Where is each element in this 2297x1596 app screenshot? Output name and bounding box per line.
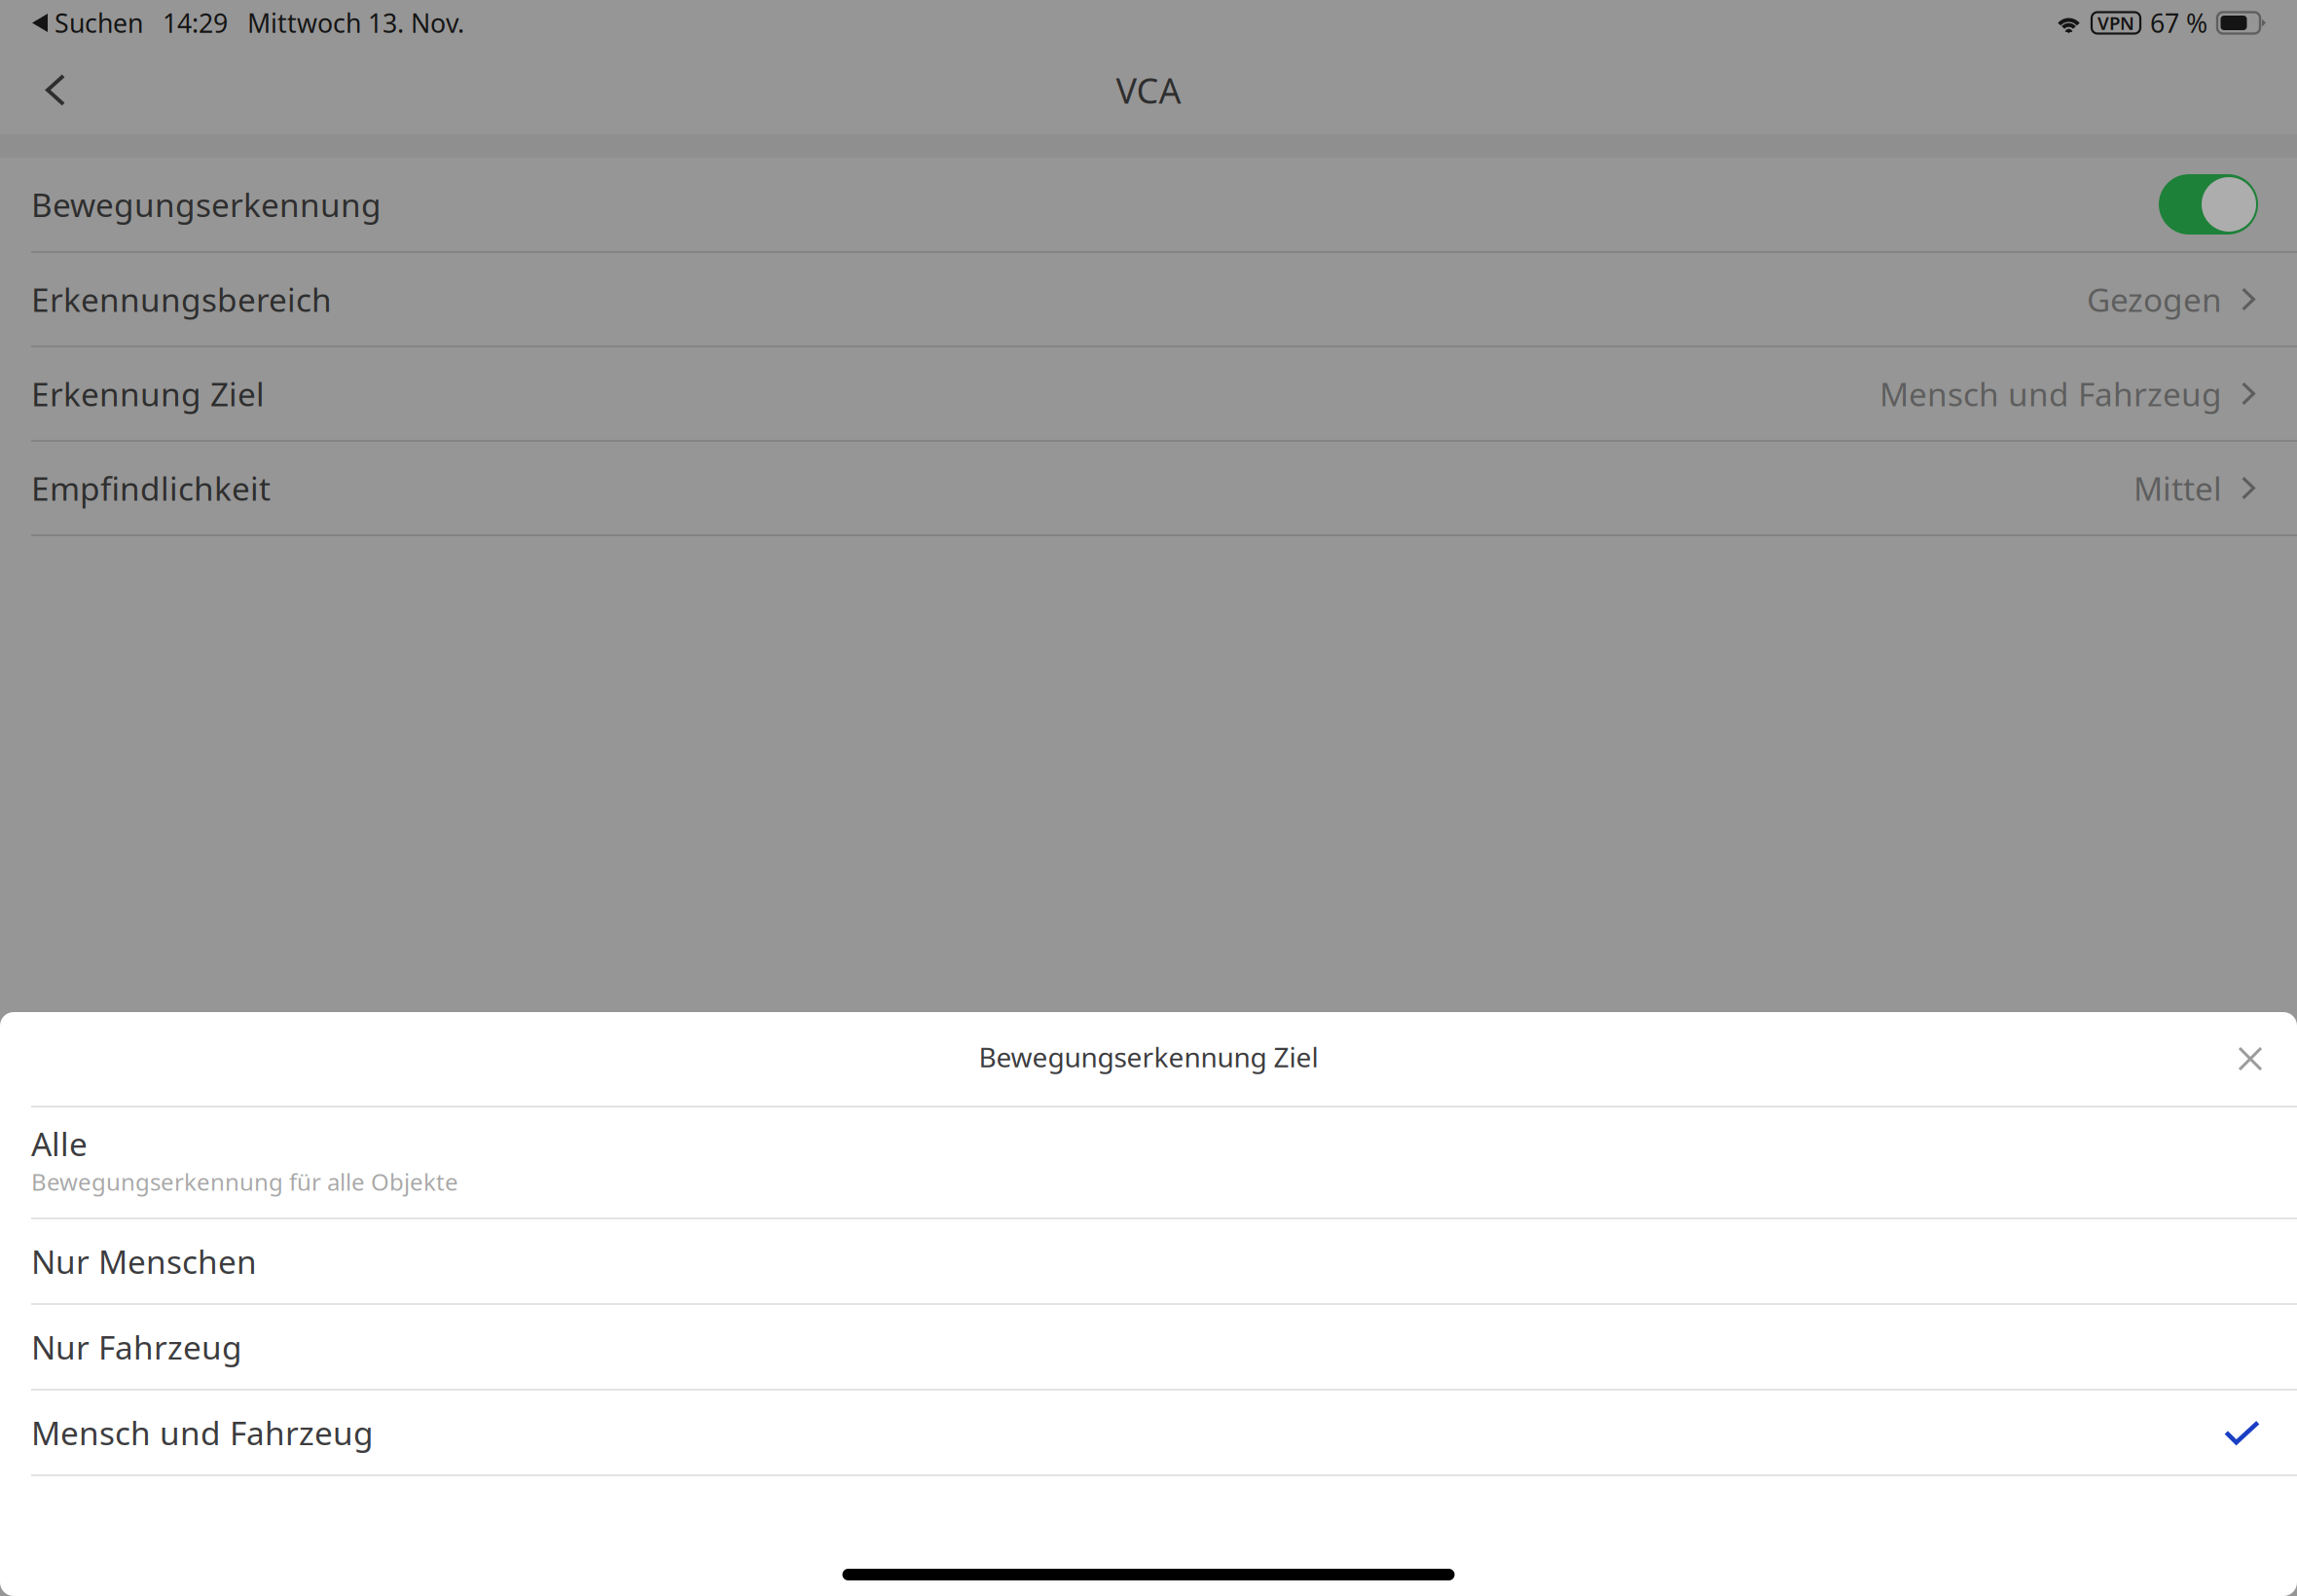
button[interactable]: Nur Menschen (0, 1219, 2297, 1303)
button[interactable]: Alle (0, 1107, 2297, 1217)
staticText: Empfindlichkeit (31, 467, 271, 510)
staticText: Bewegungserkennung (31, 183, 382, 226)
staticText: Nur Fahrzeug (31, 1325, 242, 1368)
staticText: Mensch und Fahrzeug (31, 1411, 374, 1454)
staticText: Bewegungserkennung Ziel (979, 1039, 1318, 1075)
staticText: Erkennung Ziel (31, 372, 265, 415)
button[interactable]: Erkennungsbereich (0, 253, 2297, 345)
button[interactable]: Mensch und Fahrzeug (0, 1391, 2297, 1474)
staticText: Alle (31, 1122, 88, 1165)
staticText: VCA (1116, 67, 1181, 113)
button[interactable]: Nur Fahrzeug (0, 1305, 2297, 1389)
staticText: Mittwoch 13. Nov. (247, 6, 464, 40)
staticText: Gezogen (2087, 278, 2222, 321)
button[interactable]: Erkennung Ziel (0, 347, 2297, 440)
staticText: Suchen (48, 6, 143, 40)
staticText: 14:29 (163, 6, 228, 40)
button[interactable]: Close (2215, 1024, 2285, 1094)
button[interactable]: Back (0, 46, 93, 134)
staticText: VPN (2097, 11, 2134, 35)
staticText: Mensch und Fahrzeug (1879, 372, 2222, 415)
staticText: Mittel (2133, 467, 2222, 510)
staticText: Bewegungserkennung für alle Objekte (31, 1166, 458, 1197)
staticText: Erkennungsbereich (31, 278, 332, 321)
button[interactable]: Bewegungserkennung (0, 158, 2297, 251)
button[interactable]: Empfindlichkeit (0, 442, 2297, 534)
staticText: 67 % (2150, 6, 2207, 40)
staticText: Nur Menschen (31, 1240, 257, 1283)
